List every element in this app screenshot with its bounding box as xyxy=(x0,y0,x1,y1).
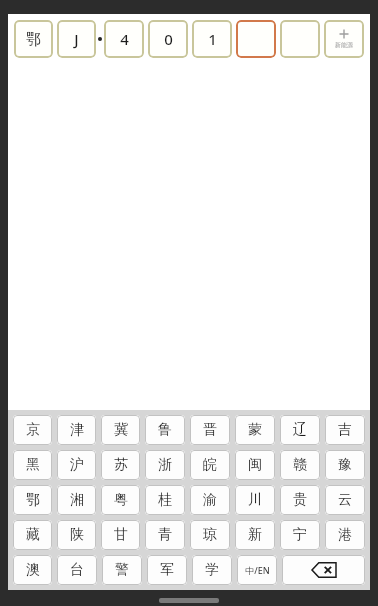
staticText: 军 xyxy=(160,561,174,579)
staticText: 新能源 xyxy=(335,41,353,49)
button[interactable]: 黑 xyxy=(13,450,52,480)
staticText: 新 xyxy=(248,526,262,544)
button[interactable]: 辽 xyxy=(280,415,320,445)
staticText: 浙 xyxy=(158,456,172,474)
button[interactable]: 云 xyxy=(325,485,365,515)
staticText: 鄂 xyxy=(26,30,41,49)
button[interactable]: 中/EN xyxy=(237,555,277,585)
button[interactable]: 宁 xyxy=(280,520,320,550)
button[interactable]: 鄂 xyxy=(14,20,53,58)
staticText: 闽 xyxy=(248,456,262,474)
staticText: 黑 xyxy=(26,456,40,474)
button[interactable]: 沪 xyxy=(57,450,96,480)
staticText: 蒙 xyxy=(248,421,262,439)
staticText: 贵 xyxy=(293,491,307,509)
button[interactable]: 蒙 xyxy=(235,415,275,445)
staticText: 津 xyxy=(70,421,84,439)
button[interactable]: 京 xyxy=(13,415,52,445)
button[interactable]: 闽 xyxy=(235,450,275,480)
button[interactable]: 台 xyxy=(57,555,97,585)
staticText: 皖 xyxy=(203,456,217,474)
staticText: 学 xyxy=(205,561,219,579)
staticText: 鲁 xyxy=(158,421,172,439)
button[interactable]: 鄂 xyxy=(13,485,52,515)
staticText: 渝 xyxy=(203,491,217,509)
button[interactable]: 删除 xyxy=(282,555,365,585)
button[interactable]: 粤 xyxy=(101,485,140,515)
button[interactable]: 藏 xyxy=(13,520,52,550)
button[interactable]: 皖 xyxy=(190,450,230,480)
staticText: 台 xyxy=(70,561,84,579)
button[interactable] xyxy=(236,20,276,58)
button[interactable]: 军 xyxy=(147,555,187,585)
staticText: 4 xyxy=(120,29,129,49)
button[interactable]: 苏 xyxy=(101,450,140,480)
staticText: 中/EN xyxy=(245,564,270,576)
button[interactable]: 浙 xyxy=(145,450,185,480)
button[interactable]: 琼 xyxy=(190,520,230,550)
button[interactable]: 0 xyxy=(148,20,188,58)
staticText: 藏 xyxy=(26,526,40,544)
staticText: 京 xyxy=(26,421,40,439)
button[interactable]: 澳 xyxy=(13,555,52,585)
button[interactable]: 4 xyxy=(104,20,144,58)
staticText: 辽 xyxy=(293,421,307,439)
staticText: 警 xyxy=(115,561,129,579)
button[interactable]: 1 xyxy=(192,20,232,58)
staticText: 湘 xyxy=(70,491,84,509)
staticText: 1 xyxy=(208,29,217,49)
button[interactable]: 湘 xyxy=(57,485,96,515)
button[interactable]: 青 xyxy=(145,520,185,550)
button[interactable] xyxy=(280,20,320,58)
staticText: 0 xyxy=(164,29,173,49)
button[interactable]: J xyxy=(57,20,96,58)
button[interactable]: 陕 xyxy=(57,520,96,550)
staticText: 甘 xyxy=(114,526,128,544)
button[interactable]: 贵 xyxy=(280,485,320,515)
staticText: 澳 xyxy=(26,561,40,579)
staticText: 云 xyxy=(338,491,352,509)
staticText: 冀 xyxy=(114,421,128,439)
staticText: 吉 xyxy=(338,421,352,439)
button[interactable]: 冀 xyxy=(101,415,140,445)
button[interactable]: 赣 xyxy=(280,450,320,480)
button[interactable]: 豫 xyxy=(325,450,365,480)
button[interactable]: 添加新能源 xyxy=(324,20,364,58)
staticText: 赣 xyxy=(293,456,307,474)
staticText: 豫 xyxy=(338,456,352,474)
staticText: 港 xyxy=(338,526,352,544)
button[interactable]: 新 xyxy=(235,520,275,550)
staticText: 晋 xyxy=(203,421,217,439)
button[interactable]: 学 xyxy=(192,555,232,585)
button[interactable]: 警 xyxy=(102,555,142,585)
button[interactable]: 吉 xyxy=(325,415,365,445)
button[interactable]: 桂 xyxy=(145,485,185,515)
staticText: 鄂 xyxy=(26,491,40,509)
button[interactable]: 鲁 xyxy=(145,415,185,445)
staticText: J xyxy=(74,29,79,49)
staticText: 沪 xyxy=(70,456,84,474)
staticText: 桂 xyxy=(158,491,172,509)
button[interactable]: 晋 xyxy=(190,415,230,445)
button[interactable]: 港 xyxy=(325,520,365,550)
staticText: 川 xyxy=(248,491,262,509)
staticText: 宁 xyxy=(293,526,307,544)
button[interactable]: 津 xyxy=(57,415,96,445)
button[interactable]: 川 xyxy=(235,485,275,515)
button[interactable]: 渝 xyxy=(190,485,230,515)
staticText: 琼 xyxy=(203,526,217,544)
staticText: 粤 xyxy=(114,491,128,509)
staticText: 苏 xyxy=(114,456,128,474)
button[interactable]: 甘 xyxy=(101,520,140,550)
staticText: 青 xyxy=(158,526,172,544)
staticText: 陕 xyxy=(70,526,84,544)
